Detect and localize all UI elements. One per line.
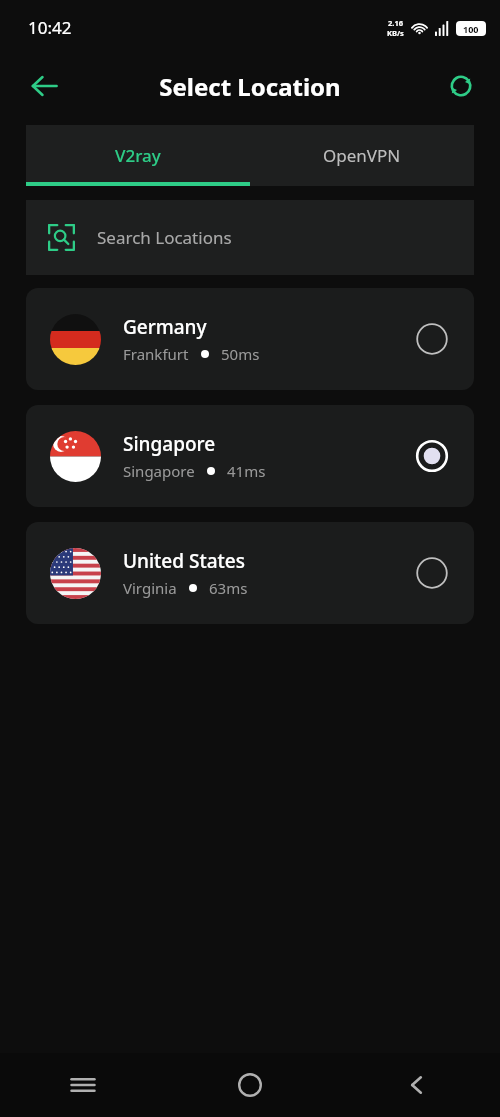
staticText: Frankfurt: [123, 344, 189, 364]
button[interactable]: United States: [26, 522, 474, 624]
staticText: 2.16: [388, 18, 403, 28]
staticText: 10:42: [28, 16, 72, 39]
staticText: 63ms: [209, 578, 248, 598]
staticText: Search Locations: [97, 226, 232, 249]
button[interactable]: Back: [18, 60, 70, 112]
staticText: OpenVPN: [323, 144, 401, 167]
staticText: 50ms: [221, 344, 260, 364]
button[interactable]: Recent apps: [0, 1053, 166, 1117]
staticText: Germany: [123, 314, 207, 340]
staticText: Singapore: [123, 431, 216, 457]
button[interactable]: Refresh: [436, 61, 486, 111]
button[interactable]: Germany: [26, 288, 474, 390]
button[interactable]: Home: [166, 1053, 333, 1117]
staticText: Singapore: [123, 461, 195, 481]
staticText: Select Location: [159, 70, 341, 103]
button[interactable]: Search Locations: [26, 200, 474, 275]
staticText: KB/s: [387, 28, 404, 38]
staticText: V2ray: [115, 144, 161, 167]
button[interactable]: Select United States: [410, 551, 454, 595]
staticText: United States: [123, 548, 245, 574]
button[interactable]: V2ray: [26, 125, 250, 186]
button[interactable]: OpenVPN: [250, 125, 474, 186]
staticText: 100: [463, 23, 479, 35]
button[interactable]: Singapore: [26, 405, 474, 507]
button[interactable]: Select Singapore: [410, 434, 454, 478]
staticText: 41ms: [227, 461, 266, 481]
staticText: Virginia: [123, 578, 177, 598]
button[interactable]: Select Germany: [410, 317, 454, 361]
button[interactable]: Back: [333, 1053, 500, 1117]
